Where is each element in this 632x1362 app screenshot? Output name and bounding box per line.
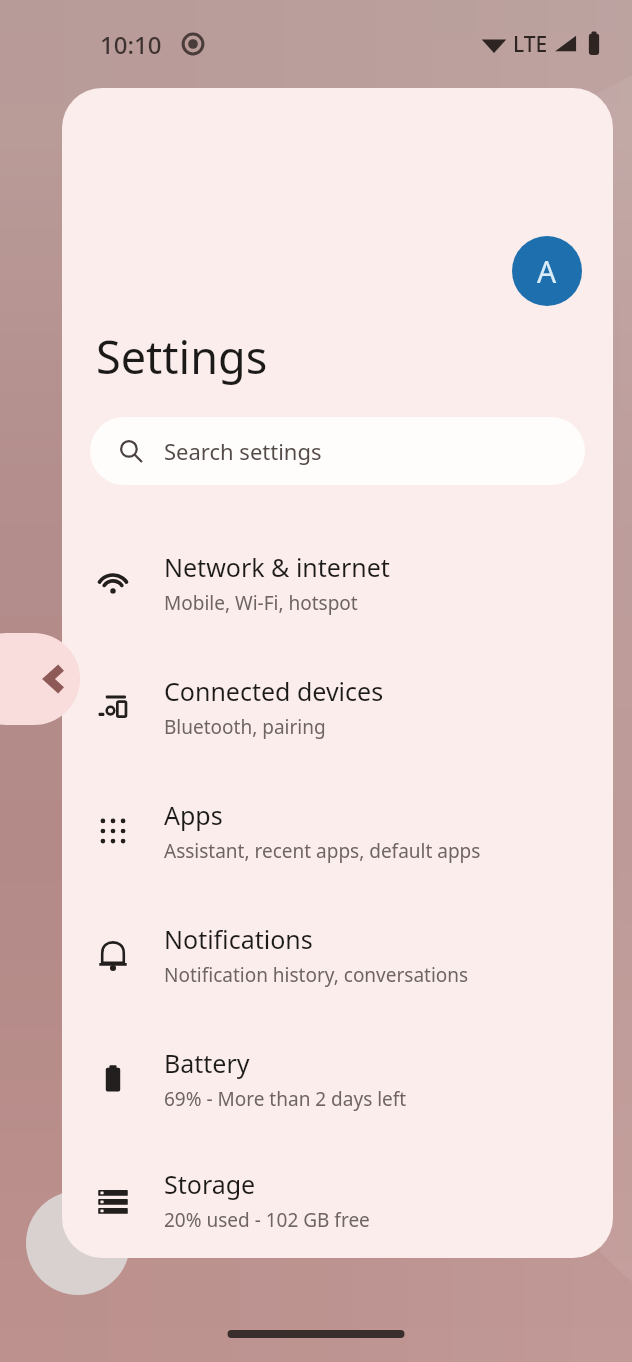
staticText: Apps	[164, 798, 223, 832]
staticText: 20% used - 102 GB free	[164, 1207, 370, 1233]
staticText: 10:10	[100, 28, 162, 61]
button[interactable]: Connected devices	[62, 645, 613, 769]
staticText: Mobile, Wi-Fi, hotspot	[164, 590, 358, 616]
staticText: 69% - More than 2 days left	[164, 1086, 407, 1112]
button[interactable]: Notifications	[62, 893, 613, 1017]
button[interactable]: Network & internet	[62, 521, 613, 645]
button[interactable]: Apps	[62, 769, 613, 893]
button[interactable]: Account	[512, 236, 582, 306]
staticText: Assistant, recent apps, default apps	[164, 838, 481, 864]
staticText: Search settings	[164, 436, 322, 466]
button[interactable]: Back	[0, 633, 80, 725]
staticText: LTE	[513, 30, 548, 59]
staticText: Connected devices	[164, 674, 384, 708]
staticText: Storage	[164, 1167, 256, 1201]
staticText: Bluetooth, pairing	[164, 714, 326, 740]
staticText: A	[537, 251, 557, 292]
button[interactable]: Storage	[62, 1141, 613, 1258]
button[interactable]: Search settings	[90, 417, 585, 485]
staticText: Notifications	[164, 922, 313, 956]
staticText: Battery	[164, 1046, 250, 1080]
staticText: Notification history, conversations	[164, 962, 469, 988]
staticText: Network & internet	[164, 550, 390, 584]
staticText: Settings	[96, 326, 268, 387]
button[interactable]: Battery	[62, 1017, 613, 1141]
